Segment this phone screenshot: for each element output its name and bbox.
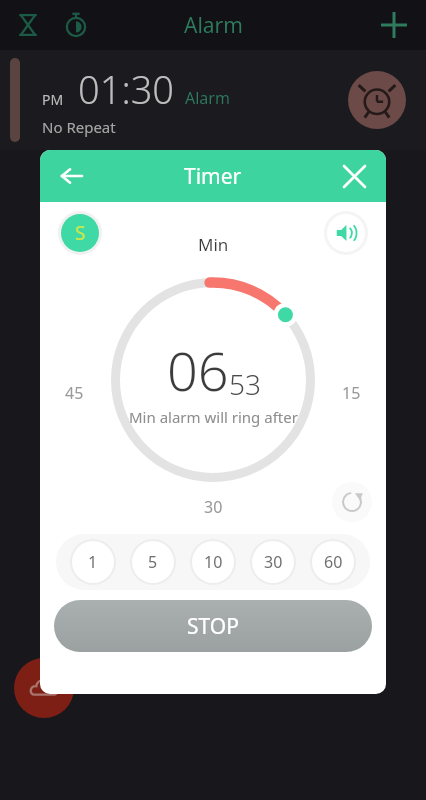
staticText: Alarm xyxy=(184,11,243,40)
staticText: 5 xyxy=(148,551,158,573)
button[interactable]: 30 xyxy=(252,541,294,583)
button[interactable]: 60 xyxy=(312,541,354,583)
staticText: 60 xyxy=(324,551,343,573)
staticText: 15 xyxy=(342,382,361,404)
staticText: 06 xyxy=(167,333,229,407)
button[interactable]: Close xyxy=(332,154,376,198)
button[interactable]: Add alarm xyxy=(372,3,416,47)
staticText: PM xyxy=(42,90,64,109)
staticText: Timer xyxy=(184,162,242,191)
staticText: STOP xyxy=(187,612,239,641)
staticText: S xyxy=(75,220,86,246)
button[interactable]: 1 xyxy=(72,541,114,583)
button[interactable]: S xyxy=(61,214,99,252)
staticText: 10 xyxy=(204,551,223,573)
button[interactable]: Timer xyxy=(8,5,48,45)
staticText: Min xyxy=(198,233,229,256)
staticText: Alarm xyxy=(185,87,230,109)
button[interactable]: 10 xyxy=(192,541,234,583)
button[interactable]: Cloud sync xyxy=(14,658,74,718)
staticText: No Repeat xyxy=(42,117,116,137)
staticText: 30 xyxy=(204,496,223,518)
button[interactable]: 5 xyxy=(132,541,174,583)
button[interactable]: Back xyxy=(50,154,94,198)
button[interactable]: Alarm type xyxy=(348,71,406,129)
staticText: 1 xyxy=(88,551,98,573)
button[interactable]: PM xyxy=(0,50,426,150)
staticText: 01:30 xyxy=(78,63,175,115)
staticText: 53 xyxy=(229,365,261,403)
button[interactable]: STOP xyxy=(54,600,372,652)
staticText: Min alarm will ring after xyxy=(129,407,298,427)
staticText: 30 xyxy=(264,551,283,573)
button[interactable]: Stopwatch xyxy=(56,5,96,45)
button[interactable]: Reset xyxy=(332,482,372,522)
staticText: 45 xyxy=(65,382,84,404)
button[interactable]: Sound xyxy=(327,214,365,252)
